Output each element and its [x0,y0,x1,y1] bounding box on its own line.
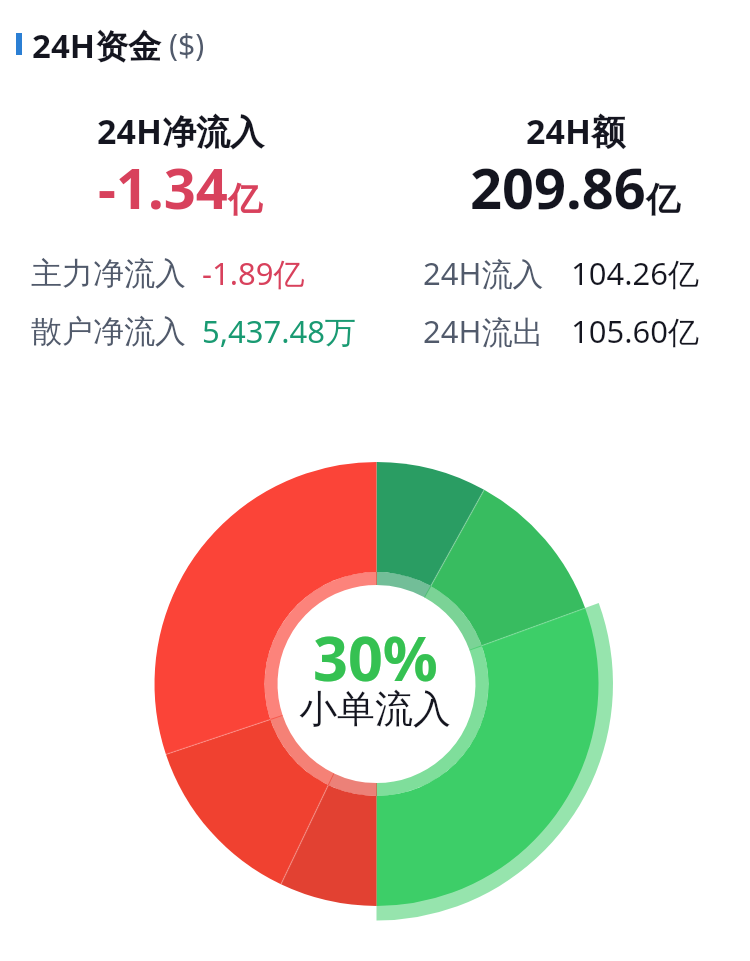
staticText: 104.26亿 [571,252,699,294]
button[interactable]: 主力净流入 [31,252,305,294]
staticText: -1.34 [98,149,228,225]
staticText: 5,437.48万 [202,310,357,352]
staticText: 209.86 [470,149,646,225]
staticText: 24H净流入 [97,108,264,154]
staticText: ($) [169,24,205,65]
button[interactable]: 24H额 [400,108,750,230]
staticText: 105.60亿 [571,310,699,352]
staticText: 24H额 [526,108,625,154]
button[interactable]: 24H资金 [16,26,750,71]
staticText: -1.89亿 [202,252,305,294]
staticText: 亿 [228,178,262,221]
staticText: 散户净流入 [31,312,186,351]
staticText: 24H流入 [423,252,544,294]
staticText: 30% [313,616,438,699]
staticText: 亿 [646,178,680,221]
button[interactable]: 24H流出 [423,310,699,352]
button[interactable]: 24H流入 [423,252,699,294]
button[interactable]: 散户净流入 [31,310,357,352]
staticText: 24H资金 [32,23,161,68]
staticText: 小单流入 [299,685,451,733]
button[interactable]: 资金流向饼图 [135,443,615,923]
button[interactable]: 24H净流入 [0,108,360,230]
staticText: 24H流出 [423,310,544,352]
staticText: 主力净流入 [31,254,186,293]
